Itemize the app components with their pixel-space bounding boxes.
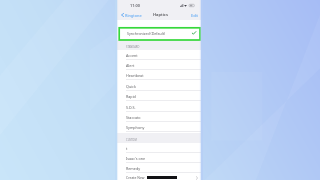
staticText: CUSTOM: [126, 138, 137, 142]
staticText: Synchronized (Default): [127, 31, 166, 36]
staticText: Symphony: [126, 125, 145, 130]
button[interactable]: Synchronized (Default): [117, 28, 201, 38]
staticText: Staccato: [126, 115, 141, 120]
button[interactable]: S.O.S.: [117, 102, 201, 112]
button[interactable]: Ringtone: [117, 10, 142, 20]
staticText: t: [126, 146, 128, 151]
button[interactable]: Staccato: [117, 112, 201, 122]
staticText: Ringtone: [125, 13, 142, 18]
button[interactable]: Remedy: [117, 163, 201, 173]
staticText: Create New: [126, 175, 145, 180]
button[interactable]: Heartbeat: [117, 70, 201, 80]
staticText: Remedy: [126, 166, 141, 171]
staticText: Alert: [126, 63, 135, 68]
staticText: STANDARD: [126, 45, 140, 49]
button[interactable]: Create New: [117, 174, 201, 180]
button[interactable]: Rapid: [117, 91, 201, 101]
staticText: Accent: [126, 53, 138, 58]
staticText: Rapid: [126, 94, 136, 99]
staticText: Haptics: [153, 12, 168, 18]
button[interactable]: Accent: [117, 50, 201, 60]
button[interactable]: Edit: [191, 10, 201, 20]
staticText: Quick: [126, 84, 136, 89]
other: Create New: [196, 176, 198, 180]
button[interactable]: Symphony: [117, 122, 201, 132]
staticText: Heartbeat: [126, 73, 144, 78]
button[interactable]: t: [117, 143, 201, 153]
button[interactable]: Alert: [117, 60, 201, 70]
button[interactable]: Quick: [117, 81, 201, 91]
staticText: S.O.S.: [126, 105, 136, 110]
button[interactable]: Isaac's one: [117, 153, 201, 163]
staticText: 11:00: [130, 3, 140, 8]
staticText: Isaac's one: [126, 156, 146, 161]
